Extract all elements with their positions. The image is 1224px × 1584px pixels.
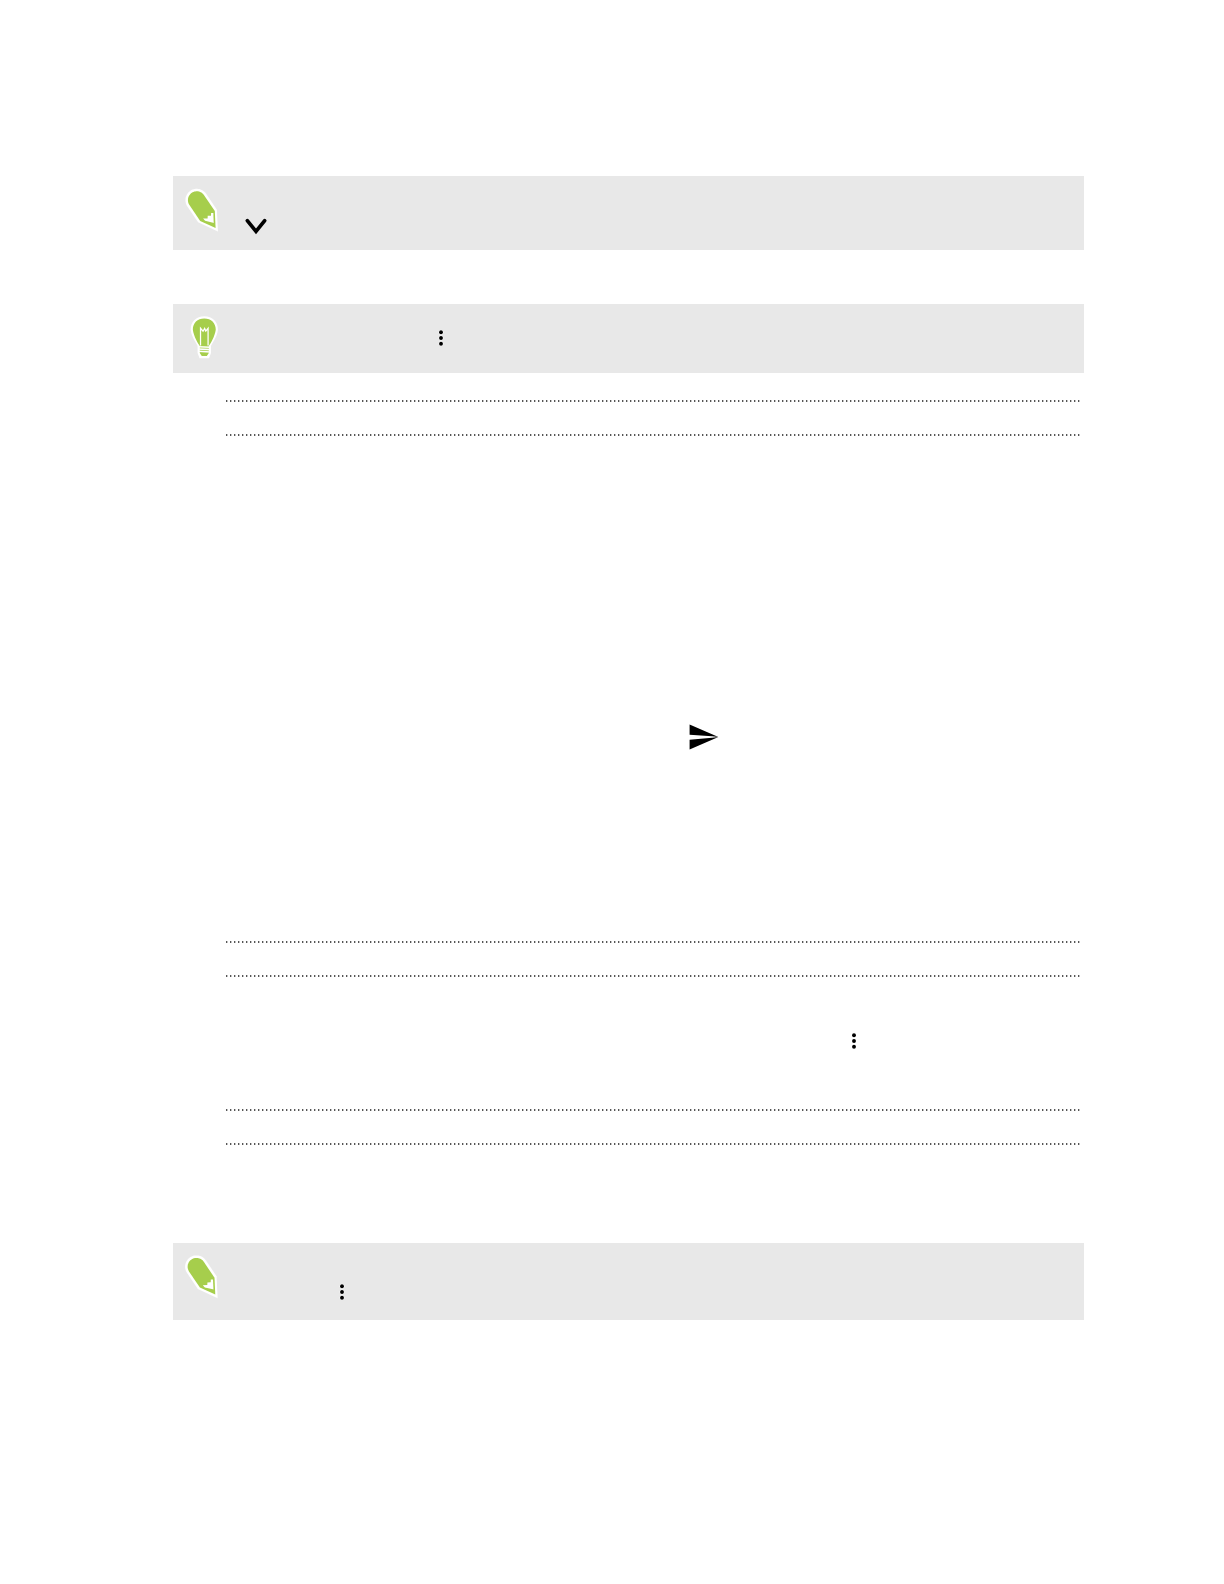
button[interactable]: Expand — [239, 209, 273, 243]
button[interactable]: More options — [327, 1277, 357, 1307]
button[interactable]: Tip — [173, 304, 1084, 373]
button[interactable]: More options — [426, 323, 456, 353]
button[interactable]: Note — [173, 1243, 1084, 1320]
button[interactable]: Note — [173, 176, 1084, 250]
button[interactable]: More options — [839, 1026, 869, 1056]
button[interactable]: Send — [684, 717, 724, 757]
